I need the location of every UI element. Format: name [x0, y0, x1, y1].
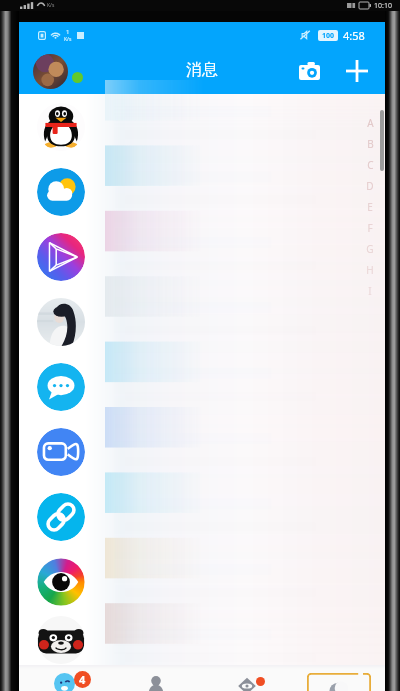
button[interactable] — [35, 354, 87, 419]
button[interactable] — [35, 94, 87, 159]
staticText: E — [367, 200, 373, 214]
staticText: 4:58 — [343, 28, 365, 43]
button[interactable]: Contacts — [110, 665, 201, 691]
button[interactable] — [35, 289, 87, 354]
staticText: D — [366, 179, 374, 193]
staticText: F — [367, 221, 373, 235]
button[interactable] — [35, 159, 87, 224]
staticText: H — [366, 263, 374, 277]
staticText: 10:10 — [374, 1, 392, 11]
staticText: 4 — [79, 672, 86, 687]
button[interactable]: Discover — [201, 665, 293, 691]
staticText: 100 — [322, 31, 335, 41]
button[interactable] — [35, 614, 87, 665]
button[interactable] — [35, 224, 87, 289]
staticText: C — [367, 158, 374, 172]
button[interactable] — [35, 484, 87, 549]
staticText: I — [368, 284, 372, 298]
staticText: 消息 — [186, 60, 218, 80]
button[interactable]: Messages — [19, 665, 110, 691]
button[interactable]: Profile — [33, 54, 68, 89]
staticText: 1 — [66, 28, 70, 36]
button[interactable]: Me — [293, 665, 385, 691]
staticText: K/s — [64, 36, 72, 43]
staticText: G — [366, 242, 374, 256]
button[interactable] — [35, 419, 87, 484]
button[interactable]: Add — [340, 54, 374, 88]
staticText: K/s — [47, 2, 55, 9]
staticText: B — [367, 137, 374, 151]
button[interactable] — [35, 549, 87, 614]
button[interactable]: Camera — [292, 54, 326, 88]
staticText: A — [367, 116, 374, 130]
